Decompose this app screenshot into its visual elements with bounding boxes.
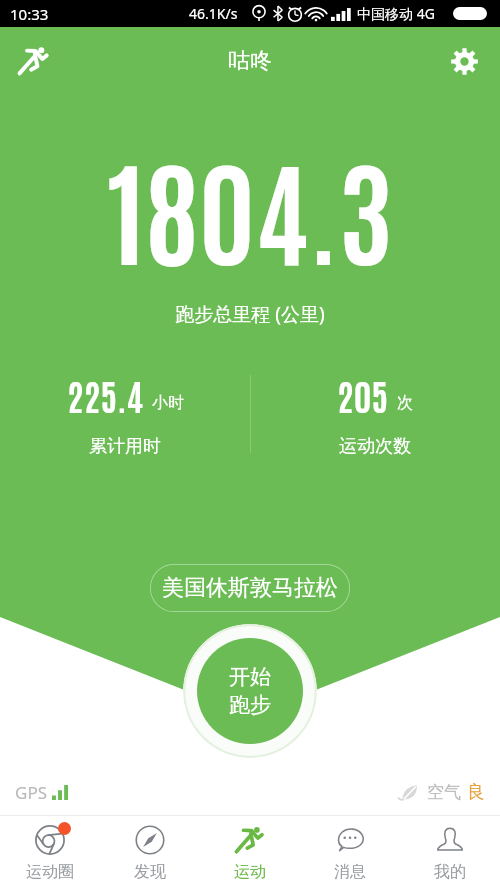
staticText: 良 bbox=[467, 781, 485, 804]
staticText: 1804.3 bbox=[0, 132, 500, 281]
button[interactable]: 消息 bbox=[300, 816, 400, 889]
staticText: 空气 bbox=[427, 782, 461, 803]
button[interactable]: 运动圈 bbox=[0, 816, 100, 889]
staticText: 运动次数 bbox=[339, 435, 411, 457]
staticText: 咕咚 bbox=[228, 47, 272, 75]
button[interactable]: 运动 bbox=[200, 816, 300, 889]
staticText: 发现 bbox=[134, 862, 166, 882]
staticText: 开始 跑步 bbox=[229, 664, 271, 718]
staticText: 美国休斯敦马拉松 bbox=[162, 574, 338, 602]
staticText: 运动圈 bbox=[26, 862, 74, 882]
staticText: 225.4 bbox=[67, 371, 144, 418]
button[interactable]: 开始 跑步 bbox=[183, 624, 317, 758]
staticText: 10:33 bbox=[10, 4, 49, 24]
button[interactable]: 美国休斯敦马拉松 bbox=[150, 564, 350, 612]
staticText: GPS bbox=[15, 781, 47, 804]
staticText: 小时 bbox=[152, 393, 184, 413]
staticText: 次 bbox=[397, 393, 413, 413]
button[interactable]: 我的 bbox=[400, 816, 500, 889]
staticText: 205 bbox=[337, 371, 389, 418]
staticText: 运动 bbox=[234, 862, 266, 882]
staticText: 我的 bbox=[434, 862, 466, 882]
staticText: 中国移动 4G bbox=[357, 4, 435, 23]
staticText: 跑步总里程 (公里) bbox=[0, 301, 500, 327]
staticText: 消息 bbox=[334, 862, 366, 882]
button[interactable]: 发现 bbox=[100, 816, 200, 889]
staticText: 46.1K/s bbox=[189, 4, 238, 23]
button[interactable]: Start run bbox=[8, 35, 60, 87]
button[interactable]: Settings bbox=[438, 35, 490, 87]
staticText: 累计用时 bbox=[89, 435, 161, 457]
